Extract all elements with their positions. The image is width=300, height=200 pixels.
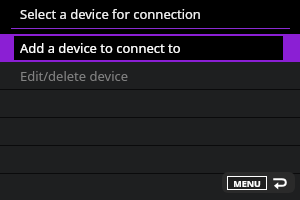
staticText: Add a device to connect to <box>20 39 181 57</box>
button[interactable]: MENU - return <box>222 172 295 193</box>
button[interactable]: Edit/delete device <box>0 62 300 89</box>
staticText: MENU <box>233 177 261 189</box>
button[interactable] <box>0 174 300 200</box>
staticText: Edit/delete device <box>20 67 129 85</box>
button[interactable]: Add a device to connect to <box>0 34 300 62</box>
staticText: Select a device for connection <box>20 5 201 23</box>
